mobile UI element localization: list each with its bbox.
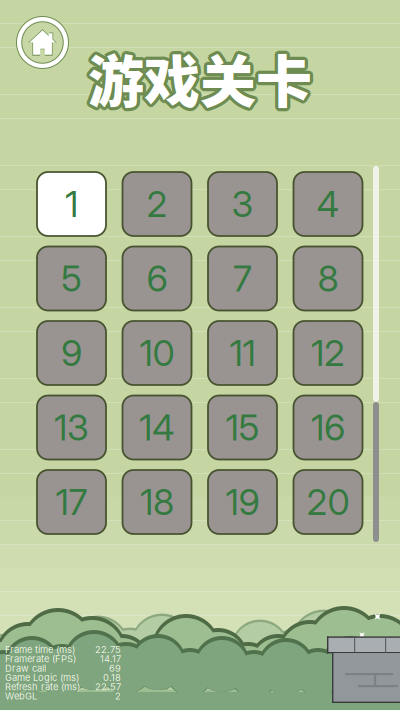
staticText: 15 xyxy=(225,406,259,449)
staticText: 1 xyxy=(65,182,78,226)
staticText: 游戏关卡 xyxy=(85,35,309,116)
staticText: 14 xyxy=(139,406,175,449)
staticText: 14.17 xyxy=(100,653,121,665)
staticText: 20 xyxy=(306,480,349,524)
staticText: 3 xyxy=(231,182,253,226)
staticText: 69 xyxy=(109,663,121,674)
button[interactable]: 2 xyxy=(122,172,191,236)
staticText: 22.75 xyxy=(95,644,121,655)
button[interactable]: 14 xyxy=(122,395,191,459)
button[interactable]: 16 xyxy=(293,395,362,459)
staticText: 游戏关卡 xyxy=(86,34,310,115)
button[interactable]: 10 xyxy=(122,321,191,385)
staticText: WebGL xyxy=(5,690,37,702)
button[interactable]: 5 xyxy=(37,246,106,310)
staticText: 游戏关卡 xyxy=(90,40,314,121)
staticText: 16 xyxy=(311,406,345,449)
button[interactable]: 8 xyxy=(293,246,362,310)
staticText: 4 xyxy=(316,182,339,226)
staticText: 游戏关卡 xyxy=(86,40,310,121)
staticText: 2 xyxy=(146,182,167,226)
button[interactable]: 13 xyxy=(37,395,106,459)
button[interactable]: 20 xyxy=(293,470,362,534)
button[interactable]: Home xyxy=(14,14,70,70)
staticText: 13 xyxy=(54,406,89,449)
staticText: 9 xyxy=(61,331,82,375)
staticText: 10 xyxy=(139,331,174,375)
staticText: Draw call xyxy=(5,663,46,674)
button[interactable]: 6 xyxy=(122,246,191,310)
staticText: 6 xyxy=(146,257,167,300)
staticText: 22.57 xyxy=(95,681,121,692)
button[interactable]: 1 xyxy=(37,172,106,236)
staticText: 游戏关卡 xyxy=(91,37,315,118)
staticText: 19 xyxy=(225,480,259,524)
staticText: 游戏关卡 xyxy=(90,34,314,115)
button[interactable]: 3 xyxy=(208,172,277,236)
staticText: Game Logic (ms) xyxy=(5,672,79,683)
button[interactable]: 17 xyxy=(37,470,106,534)
staticText: Refresh rate (ms) xyxy=(5,681,80,692)
staticText: 17 xyxy=(55,480,87,524)
staticText: 18 xyxy=(140,480,174,524)
button[interactable]: 15 xyxy=(208,395,277,459)
staticText: Framerate (FPS) xyxy=(5,653,76,665)
button[interactable]: 4 xyxy=(293,172,362,236)
button[interactable]: 9 xyxy=(37,321,106,385)
staticText: 游戏关卡 xyxy=(85,37,309,118)
button[interactable]: 11 xyxy=(208,321,277,385)
staticText: 游戏关卡 xyxy=(85,39,309,120)
button[interactable]: 18 xyxy=(122,470,191,534)
staticText: 8 xyxy=(317,257,338,300)
staticText: 5 xyxy=(61,257,82,300)
staticText: Frame time (ms) xyxy=(5,644,75,655)
staticText: 0.18 xyxy=(103,672,121,683)
button[interactable]: 19 xyxy=(208,470,277,534)
staticText: 12 xyxy=(311,331,345,375)
staticText: 游戏关卡 xyxy=(88,40,312,121)
staticText: 7 xyxy=(233,257,252,300)
staticText: 游戏关卡 xyxy=(91,39,315,120)
staticText: 2 xyxy=(115,690,121,702)
button[interactable]: 12 xyxy=(293,321,362,385)
staticText: 游戏关卡 xyxy=(91,35,315,116)
staticText: 11 xyxy=(229,331,255,375)
staticText: 游戏关卡 xyxy=(88,37,312,118)
button[interactable]: 7 xyxy=(208,246,277,310)
staticText: 游戏关卡 xyxy=(88,34,312,115)
